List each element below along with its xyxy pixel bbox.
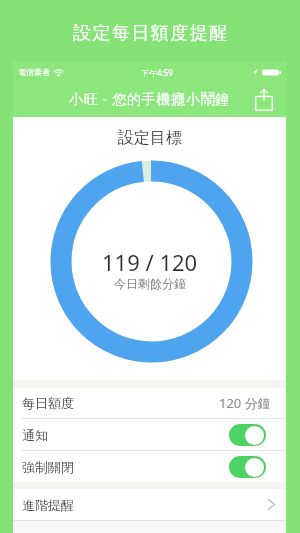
button[interactable]: 進階提醒 <box>13 489 286 520</box>
staticText: 強制關閉 <box>22 459 74 475</box>
button[interactable] <box>229 456 266 478</box>
button[interactable] <box>253 89 275 111</box>
staticText: 通知 <box>22 427 48 443</box>
staticText: 電信業者 <box>18 67 50 77</box>
staticText: 每日額度 <box>22 395 74 411</box>
staticText: 120 分鐘 <box>219 394 271 412</box>
button[interactable]: 通知 <box>13 419 286 450</box>
button[interactable] <box>229 424 266 446</box>
staticText: 設定目標 <box>118 128 182 148</box>
staticText: 小旺 - 您的手機癮小鬧鐘 <box>69 89 230 108</box>
button[interactable]: 強制關閉 <box>13 451 286 482</box>
staticText: 下午4:59 <box>141 67 173 78</box>
staticText: 119 / 120 <box>102 247 198 277</box>
staticText: 設定每日額度提醒 <box>72 22 228 45</box>
staticText: 今日剩餘分鐘 <box>114 276 186 291</box>
button[interactable]: 每日額度 <box>13 388 286 418</box>
staticText: 進階提醒 <box>22 497 74 513</box>
